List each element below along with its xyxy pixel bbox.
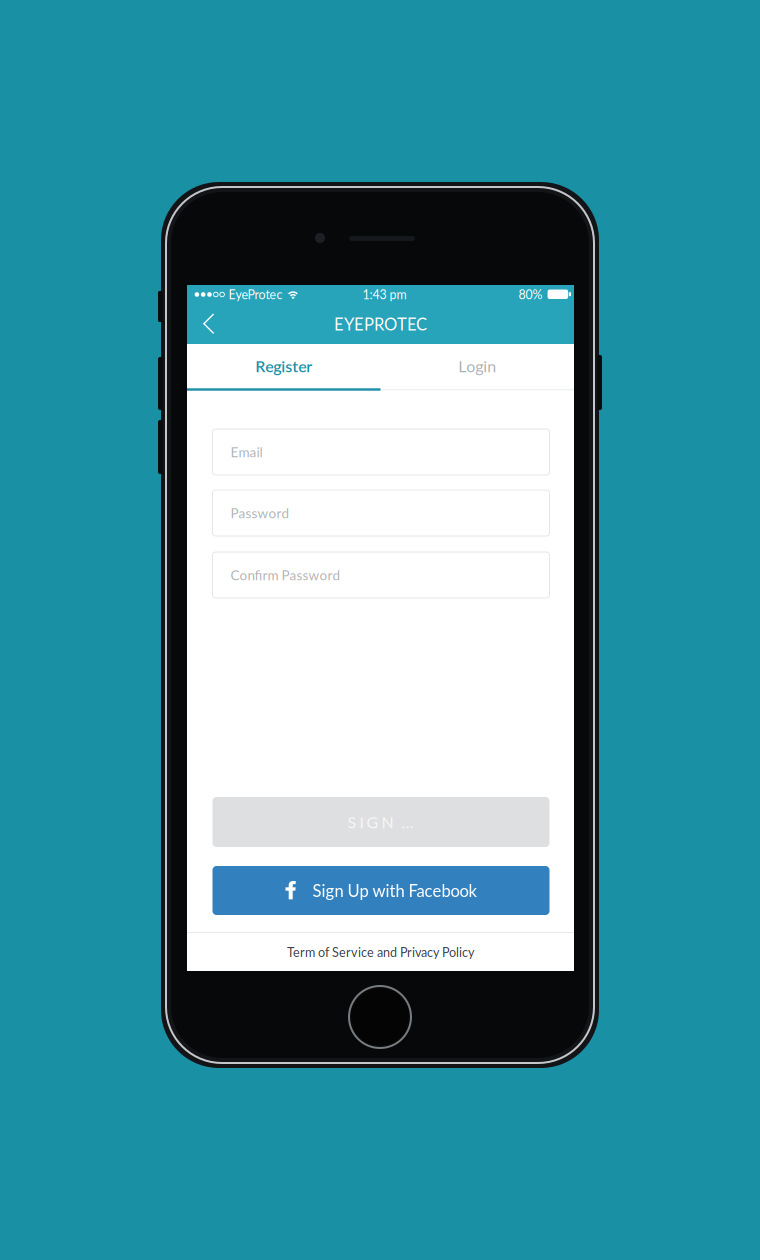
staticText: 80% bbox=[519, 287, 543, 302]
button[interactable]: Sign Up with Facebook bbox=[212, 866, 549, 915]
staticText: EyeProtec bbox=[228, 287, 282, 302]
button[interactable]: Password bbox=[212, 490, 549, 536]
staticText: Login bbox=[458, 356, 496, 376]
staticText: Register bbox=[255, 356, 312, 376]
button[interactable]: Email bbox=[212, 429, 549, 475]
staticText: SIGN UP bbox=[347, 812, 425, 832]
staticText: 1:43 pm bbox=[362, 287, 406, 302]
staticText: Email bbox=[230, 444, 262, 460]
button[interactable]: Back bbox=[186, 304, 230, 344]
staticText: Sign Up with Facebook bbox=[312, 880, 476, 900]
button[interactable]: Term of Service and Privacy Policy bbox=[187, 933, 574, 971]
staticText: Confirm Password bbox=[230, 567, 340, 583]
button[interactable]: Confirm Password bbox=[212, 552, 549, 598]
staticText: EYEPROTEC bbox=[334, 314, 427, 334]
staticText: Term of Service and Privacy Policy bbox=[287, 944, 474, 959]
staticText: Password bbox=[230, 505, 289, 521]
button[interactable]: Login bbox=[380, 344, 574, 388]
button[interactable]: Register bbox=[187, 344, 380, 388]
